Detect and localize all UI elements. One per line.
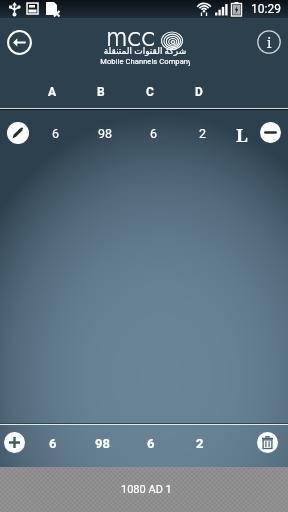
button[interactable]: 1080 AD 1: [0, 467, 288, 512]
staticText: i: [267, 33, 272, 52]
button[interactable]: D: [179, 82, 219, 102]
button[interactable]: Remove: [260, 122, 281, 143]
staticText: 10:29: [251, 2, 281, 16]
staticText: 6: [49, 436, 57, 451]
button[interactable]: Edit: [7, 122, 29, 144]
button[interactable]: Back: [7, 30, 32, 55]
staticText: mcc: [106, 15, 156, 57]
staticText: D: [195, 85, 203, 99]
staticText: 6: [52, 126, 60, 141]
staticText: 2: [199, 126, 207, 141]
staticText: Mobile Channels Company: [100, 57, 190, 66]
button[interactable]: C: [130, 82, 170, 102]
button[interactable]: B: [81, 82, 121, 102]
staticText: 1080 AD 1: [121, 483, 172, 496]
staticText: C: [146, 85, 154, 99]
button[interactable]: Info: [257, 30, 281, 54]
staticText: 6: [147, 436, 155, 451]
staticText: A: [48, 85, 57, 99]
staticText: شركة القنوات المتنقلة: [103, 46, 187, 57]
button[interactable]: Delete: [257, 432, 278, 453]
staticText: B: [97, 85, 105, 99]
staticText: 98: [98, 126, 113, 141]
staticText: L: [236, 123, 248, 143]
staticText: 6: [150, 126, 158, 141]
button[interactable]: A: [32, 82, 72, 102]
staticText: 2: [196, 436, 204, 451]
button[interactable]: Add: [4, 432, 25, 453]
button[interactable]: L: [232, 123, 252, 143]
staticText: 98: [95, 436, 110, 451]
